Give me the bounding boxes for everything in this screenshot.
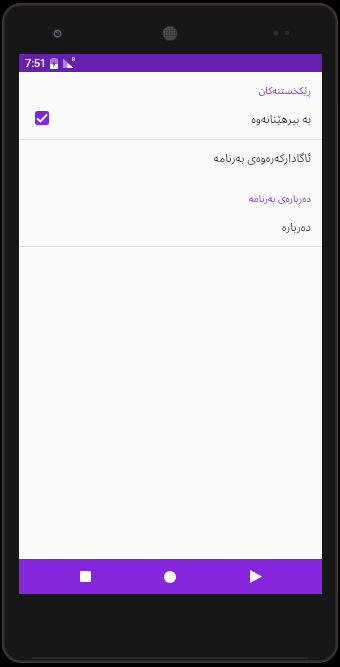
staticText: R	[72, 57, 75, 62]
button[interactable]: به بیرهێنانەوه	[19, 98, 322, 140]
button[interactable]: ئاگادارکەرەوەی بەرنامە	[19, 139, 322, 177]
staticText: دەربارەی بەرنامە	[248, 191, 311, 205]
staticText: ئاگادارکەرەوەی بەرنامە	[213, 150, 311, 166]
button[interactable]: Back	[239, 559, 273, 594]
staticText: به بیرهێنانەوه	[251, 111, 311, 127]
button[interactable]: دەربارە	[19, 210, 322, 244]
staticText: ڕێکخستنەکان	[258, 83, 311, 97]
staticText: دەربارە	[281, 219, 311, 235]
button[interactable]: Home	[153, 559, 187, 594]
button[interactable]: Recent apps	[68, 559, 102, 594]
staticText: 7:51	[25, 57, 47, 70]
